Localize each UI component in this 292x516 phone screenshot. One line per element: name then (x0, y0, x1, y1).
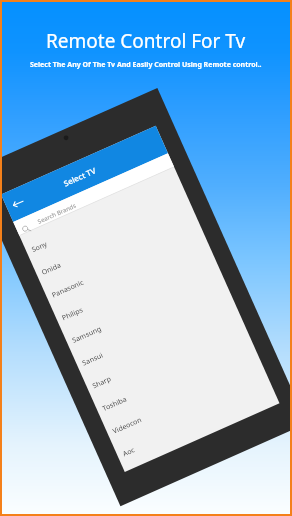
button[interactable]: Select TV screen preview (0, 0, 292, 516)
